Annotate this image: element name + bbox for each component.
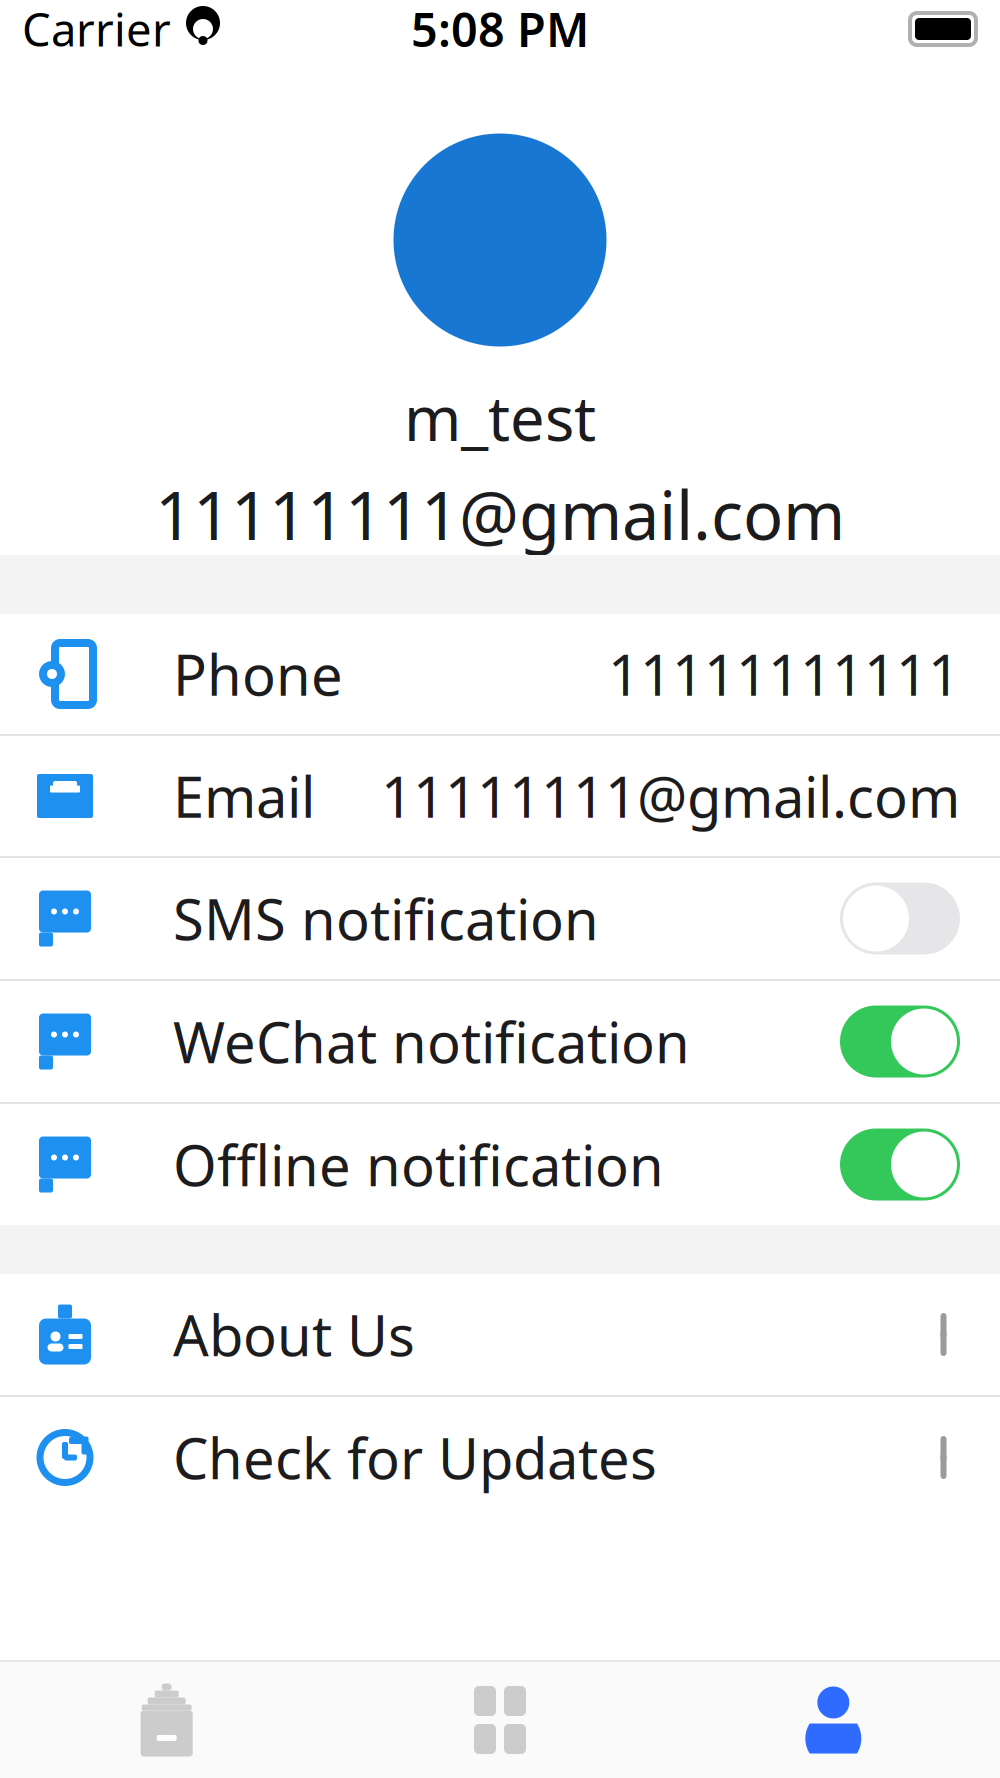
button[interactable]: Check for Updates [0, 1397, 1000, 1518]
staticText: 11111111@gmail.com [381, 759, 960, 833]
staticText: SMS notification [173, 881, 599, 956]
staticText: m_test [404, 376, 596, 458]
staticText: Check for Updates [173, 1420, 657, 1495]
staticText: Email [173, 759, 315, 833]
staticText: 5:08 PM [411, 0, 589, 60]
button[interactable]: Apps [333, 1683, 667, 1757]
staticText: Offline notification [173, 1127, 664, 1202]
staticText: Phone [173, 637, 343, 711]
staticText: 11111111@gmail.com [155, 470, 845, 558]
button[interactable]: Offline notification [0, 1104, 1000, 1225]
button[interactable]: SMS notification [0, 858, 1000, 979]
button[interactable]: Profile [667, 1683, 1000, 1757]
staticText: About Us [173, 1297, 415, 1372]
button[interactable]: About Us [0, 1274, 1000, 1395]
button[interactable]: Phone [0, 614, 1000, 734]
staticText: Carrier [22, 0, 171, 59]
button[interactable]: Home [0, 1683, 333, 1757]
button[interactable]: Email [0, 736, 1000, 856]
staticText: WeChat notification [173, 1004, 690, 1079]
staticText: 11111111111 [608, 637, 960, 711]
button[interactable]: WeChat notification [0, 981, 1000, 1102]
